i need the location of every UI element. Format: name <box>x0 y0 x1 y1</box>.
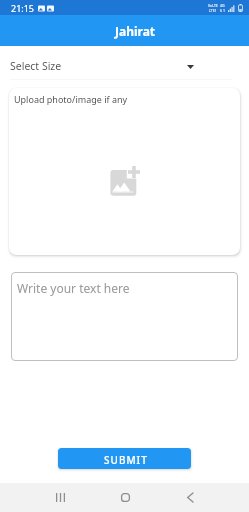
staticText: 4G <box>220 3 225 8</box>
button[interactable]: Write your text here <box>11 272 238 361</box>
button[interactable]: Upload photo/image if any <box>9 88 240 255</box>
staticText: SUBMIT <box>104 453 148 467</box>
button[interactable]: Recent apps <box>45 483 75 512</box>
staticText: 6 1 <box>220 8 225 13</box>
staticText: Upload photo/image if any <box>14 93 128 105</box>
staticText: Write your text here <box>17 280 130 296</box>
staticText: VoLTE <box>208 3 218 8</box>
button[interactable]: SUBMIT <box>58 448 191 469</box>
button[interactable]: Select Size <box>0 46 249 80</box>
staticText: LTE1 <box>209 8 217 13</box>
staticText: 21:15 <box>11 2 35 14</box>
staticText: Jahirat <box>115 23 156 39</box>
button[interactable]: Home <box>110 483 140 512</box>
staticText: Select Size <box>10 59 62 73</box>
button[interactable]: Back <box>175 483 205 512</box>
